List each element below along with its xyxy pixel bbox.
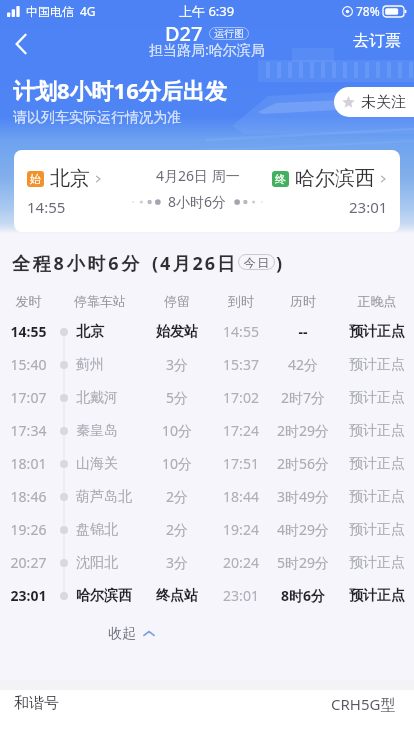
staticText: 秦皇岛: [76, 422, 118, 440]
staticText: 5时29分: [275, 553, 331, 572]
staticText: 请以列车实际运行情况为准: [13, 109, 181, 127]
button[interactable]: 20:27: [0, 546, 414, 579]
staticText: 14:55: [0, 322, 57, 341]
staticText: 北京: [76, 323, 104, 341]
button[interactable]: 15:40: [0, 348, 414, 381]
staticText: 发时: [0, 293, 57, 309]
staticText: 23:01: [0, 586, 57, 605]
staticText: 今日: [243, 255, 270, 270]
staticText: 运行图: [214, 27, 244, 40]
staticText: 预计正点: [345, 389, 409, 407]
staticText: 18:46: [0, 487, 57, 506]
staticText: ): [276, 251, 283, 273]
button[interactable]: 19:26: [0, 513, 414, 546]
staticText: 23:01: [213, 586, 269, 605]
staticText: 78%: [356, 3, 380, 19]
staticText: 沈阳北: [76, 554, 118, 572]
staticText: 17:07: [0, 388, 57, 407]
staticText: 和谐号: [14, 694, 59, 713]
staticText: 4G: [80, 3, 96, 19]
staticText: 预计正点: [345, 422, 409, 440]
staticText: 始: [30, 172, 41, 186]
staticText: 预计正点: [345, 554, 409, 572]
staticText: 预计正点: [345, 488, 409, 506]
staticText: 始发站: [149, 323, 205, 341]
staticText: 5分: [149, 388, 205, 407]
staticText: 2时56分: [275, 454, 331, 473]
staticText: 14:55: [213, 322, 269, 341]
staticText: 2时29分: [275, 421, 331, 440]
staticText: 葫芦岛北: [76, 488, 132, 506]
staticText: 蓟州: [76, 356, 104, 374]
staticText: 终点站: [149, 587, 205, 605]
button[interactable]: 18:46: [0, 480, 414, 513]
staticText: 到时: [213, 293, 269, 309]
button[interactable]: 14:55: [0, 315, 414, 348]
staticText: 北京: [50, 166, 90, 191]
staticText: 去订票: [353, 31, 401, 51]
staticText: 历时: [275, 293, 331, 309]
button[interactable]: 收起: [104, 621, 159, 647]
staticText: 17:34: [0, 421, 57, 440]
staticText: 终: [275, 172, 286, 186]
staticText: 2分: [149, 487, 205, 506]
staticText: 预计正点: [345, 587, 409, 605]
staticText: 停靠车站: [72, 293, 128, 309]
staticText: CRH5G型: [331, 694, 396, 714]
staticText: 18:01: [0, 454, 57, 473]
staticText: 19:24: [213, 520, 269, 539]
staticText: 未关注: [361, 93, 406, 112]
staticText: 收起: [108, 625, 136, 643]
button[interactable]: 未关注: [334, 87, 414, 117]
staticText: 哈尔滨西: [295, 166, 375, 191]
staticText: 4时29分: [275, 520, 331, 539]
staticText: 3分: [149, 355, 205, 374]
button[interactable]: 始: [14, 150, 400, 232]
staticText: 预计正点: [345, 455, 409, 473]
staticText: 2时7分: [275, 388, 331, 407]
staticText: 17:02: [213, 388, 269, 407]
staticText: 23:01: [349, 197, 388, 217]
button[interactable]: Back: [2, 25, 40, 63]
staticText: 8时6分: [275, 586, 331, 605]
staticText: --: [275, 322, 331, 341]
button[interactable]: 23:01: [0, 579, 414, 612]
staticText: (4月26日: [152, 251, 237, 273]
staticText: 18:44: [213, 487, 269, 506]
staticText: 上午 6:39: [179, 2, 235, 20]
staticText: 8小时6分: [168, 192, 227, 211]
button[interactable]: 运行图: [209, 27, 249, 40]
button[interactable]: 18:01: [0, 447, 414, 480]
staticText: 17:51: [213, 454, 269, 473]
staticText: 17:24: [213, 421, 269, 440]
button[interactable]: 17:34: [0, 414, 414, 447]
staticText: 中国电信: [26, 4, 74, 19]
staticText: 4月26日 周一: [156, 166, 240, 185]
staticText: 预计正点: [345, 323, 409, 341]
staticText: 全程8小时6分: [12, 251, 143, 273]
staticText: 10分: [149, 454, 205, 473]
staticText: 哈尔滨西: [76, 587, 132, 605]
staticText: 计划8小时16分后出发: [13, 75, 227, 105]
staticText: 担当路局:哈尔滨局: [149, 40, 265, 57]
staticText: 15:37: [213, 355, 269, 374]
staticText: 10分: [149, 421, 205, 440]
staticText: 山海关: [76, 455, 118, 473]
staticText: 停留: [149, 293, 205, 309]
staticText: 3分: [149, 553, 205, 572]
staticText: 14:55: [27, 197, 66, 217]
staticText: D27: [165, 20, 203, 47]
button[interactable]: 去订票: [340, 23, 414, 59]
staticText: 预计正点: [345, 356, 409, 374]
staticText: 15:40: [0, 355, 57, 374]
button[interactable]: 17:07: [0, 381, 414, 414]
staticText: 2分: [149, 520, 205, 539]
staticText: 盘锦北: [76, 521, 118, 539]
staticText: 3时49分: [275, 487, 331, 506]
staticText: 正晚点: [345, 293, 409, 309]
staticText: 42分: [275, 355, 331, 374]
staticText: 20:24: [213, 553, 269, 572]
staticText: 19:26: [0, 520, 57, 539]
staticText: 20:27: [0, 553, 57, 572]
staticText: 预计正点: [345, 521, 409, 539]
